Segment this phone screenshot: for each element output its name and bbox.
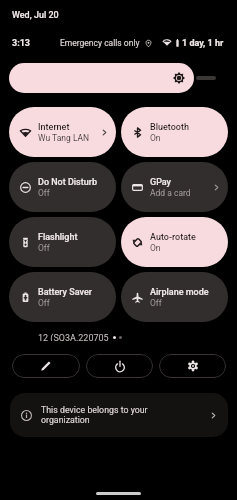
- staticText: 12 (SQ3A.220705: [38, 333, 109, 341]
- button[interactable]: Auto-rotate: [121, 217, 228, 267]
- staticText: 1 day, 1 hr: [182, 38, 224, 48]
- button[interactable]: This device belongs to your organization: [10, 393, 228, 437]
- staticText: Emergency calls only: [60, 38, 140, 48]
- staticText: Airplane mode: [150, 287, 209, 298]
- staticText: On: [150, 243, 161, 253]
- staticText: Internet: [38, 122, 70, 133]
- button[interactable]: GPay: [121, 162, 228, 212]
- button[interactable]: Bluetooth: [121, 107, 228, 157]
- button[interactable]: Airplane mode: [121, 272, 228, 322]
- staticText: Add a card: [150, 188, 191, 198]
- button[interactable]: Power: [86, 354, 153, 378]
- staticText: On: [150, 133, 161, 143]
- staticText: Wed, Jul 20: [12, 10, 59, 21]
- button[interactable]: Edit tiles: [12, 354, 80, 378]
- staticText: Off: [38, 298, 50, 308]
- button[interactable]: Flashlight: [9, 217, 116, 267]
- staticText: Flashlight: [38, 232, 78, 243]
- staticText: 3:13: [12, 38, 31, 48]
- button[interactable]: Do Not Disturb: [9, 162, 116, 212]
- staticText: Bluetooth: [150, 122, 189, 133]
- staticText: This device belongs to your organization: [41, 405, 153, 425]
- staticText: GPay: [150, 177, 172, 188]
- button[interactable]: Brightness: [9, 63, 194, 93]
- staticText: Do Not Disturb: [38, 177, 97, 188]
- staticText: Off: [38, 243, 50, 253]
- staticText: Off: [150, 298, 162, 308]
- button[interactable]: Settings: [159, 354, 226, 378]
- staticText: Off: [38, 188, 50, 198]
- button[interactable]: Battery Saver: [9, 272, 116, 322]
- button[interactable]: Internet: [9, 107, 116, 157]
- staticText: Auto-rotate: [150, 232, 196, 243]
- staticText: Wu Tang LAN: [38, 133, 90, 143]
- staticText: Battery Saver: [38, 287, 92, 298]
